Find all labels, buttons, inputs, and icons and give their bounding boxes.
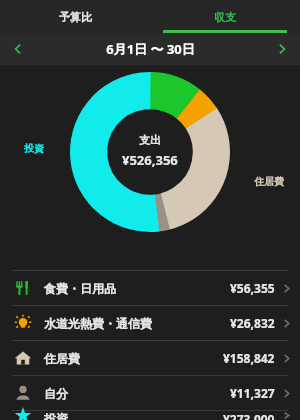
staticText: 予算比 <box>59 10 92 24</box>
button[interactable]: 水道光熱費・通信費 <box>0 306 300 340</box>
button[interactable]: 自分 <box>0 376 300 410</box>
staticText: 住居費 <box>44 351 80 366</box>
staticText: 住居費 <box>254 175 284 188</box>
staticText: ¥526,356 <box>122 151 178 169</box>
staticText: ¥158,842 <box>223 350 275 366</box>
button[interactable]: Previous month <box>0 33 36 65</box>
staticText: 水道光熱費・通信費 <box>44 316 152 331</box>
staticText: ¥56,355 <box>230 280 275 296</box>
staticText: 自分 <box>44 386 68 401</box>
button[interactable]: 住居費 <box>0 341 300 375</box>
staticText: ¥273,000 <box>223 411 275 420</box>
staticText: ¥11,327 <box>230 385 275 401</box>
button[interactable]: 投資 <box>0 411 300 420</box>
button[interactable]: 食費・日用品 <box>0 271 300 305</box>
staticText: 投資 <box>44 411 68 420</box>
staticText: 支出 <box>139 133 161 147</box>
staticText: 6月1日 〜 30日 <box>106 40 195 58</box>
button[interactable]: 収支 <box>150 0 300 33</box>
button[interactable]: 予算比 <box>0 0 150 33</box>
staticText: 収支 <box>214 10 236 24</box>
staticText: 投資 <box>24 142 44 155</box>
staticText: 食費・日用品 <box>44 281 116 296</box>
staticText: ¥26,832 <box>230 315 275 331</box>
button[interactable]: Next month <box>264 33 300 65</box>
